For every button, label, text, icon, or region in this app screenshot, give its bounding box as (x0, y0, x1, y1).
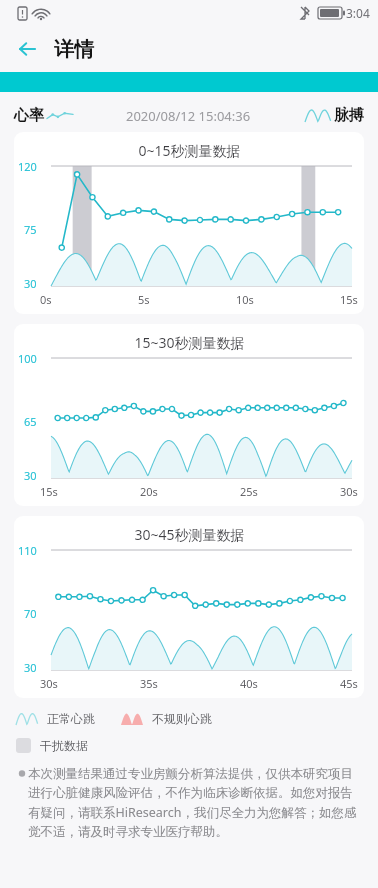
staticText: 30s (40, 676, 58, 691)
staticText: 0s (40, 292, 52, 307)
staticText: 100 (18, 351, 37, 366)
staticText: 心率 (14, 106, 44, 125)
staticText: 30 (24, 276, 37, 291)
staticText: 本次测量结果通过专业房颤分析算法提供，仅供本研究项目进行心脏健康风险评估，不作为… (28, 766, 362, 840)
staticText: 干扰数据 (40, 738, 88, 753)
staticText: 75 (24, 222, 37, 237)
staticText: 正常心跳 (47, 711, 95, 726)
staticText: 2020/08/12 15:04:36 (126, 107, 251, 125)
staticText: 65 (24, 414, 37, 429)
staticText: 30s (340, 484, 358, 499)
staticText: 3:04 (346, 5, 370, 21)
staticText: 30 (24, 660, 37, 675)
staticText: 110 (18, 543, 37, 558)
button[interactable]: 15~30秒测量数据 (14, 324, 364, 506)
button[interactable]: 0~15秒测量数据 (14, 132, 364, 314)
staticText: 脉搏 (334, 106, 364, 125)
staticText: 15~30秒测量数据 (134, 333, 245, 352)
staticText: 70 (24, 606, 37, 621)
staticText: 15s (40, 484, 58, 499)
staticText: 20s (140, 484, 158, 499)
staticText: 10s (236, 292, 254, 307)
staticText: 15s (340, 292, 358, 307)
staticText: 35s (140, 676, 158, 691)
staticText: 0~15秒测量数据 (138, 141, 241, 160)
staticText: 25s (240, 484, 258, 499)
staticText: 详情 (54, 37, 94, 62)
staticText: 120 (18, 159, 37, 174)
button[interactable]: 30~45秒测量数据 (14, 516, 364, 698)
staticText: 30~45秒测量数据 (134, 525, 245, 544)
staticText: 30 (24, 468, 37, 483)
staticText: 40s (240, 676, 258, 691)
staticText: 45s (340, 676, 358, 691)
staticText: 不规则心跳 (152, 711, 212, 726)
staticText: 5s (138, 292, 150, 307)
button[interactable]: Back (8, 29, 48, 69)
